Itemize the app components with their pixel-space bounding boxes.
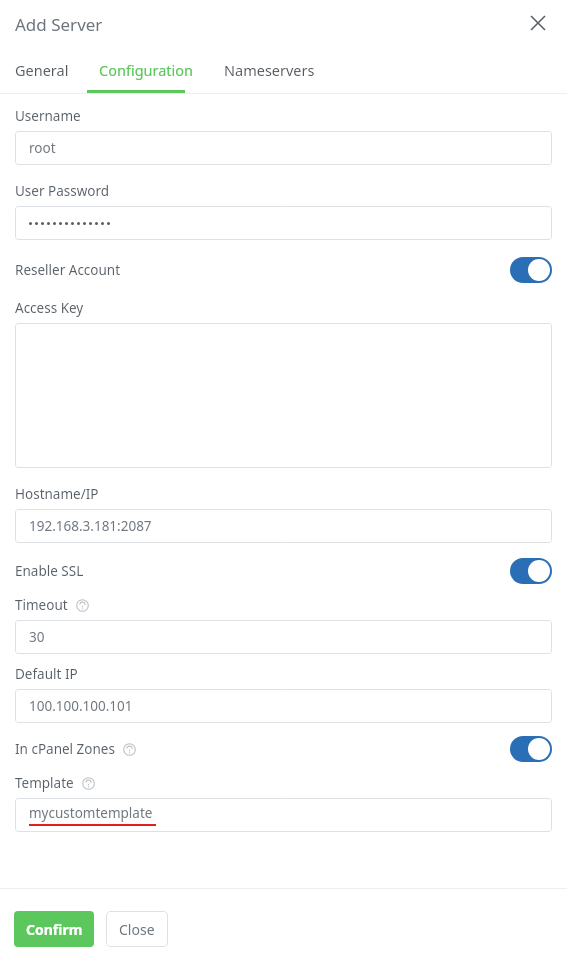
staticText: Template — [15, 774, 74, 792]
staticText: Configuration — [99, 60, 194, 80]
button[interactable]: Nameservers — [209, 47, 330, 93]
button[interactable]: Close — [106, 911, 168, 947]
button[interactable]: In cPanel Zones toggle, on — [510, 736, 552, 762]
button[interactable]: 192.168.3.181:2087 — [15, 509, 552, 543]
staticText: Timeout — [15, 596, 68, 614]
button[interactable]: 100.100.100.101 — [15, 689, 552, 723]
staticText: 100.100.100.101 — [29, 697, 133, 715]
button[interactable]: 30 — [15, 620, 552, 654]
staticText: 30 — [29, 628, 45, 646]
button[interactable] — [15, 206, 552, 240]
button[interactable]: Confirm — [14, 911, 94, 947]
staticText: Hostname/IP — [15, 485, 99, 503]
staticText: Default IP — [15, 665, 78, 683]
button[interactable]: Close dialog — [521, 6, 555, 40]
button[interactable]: root — [15, 131, 552, 165]
button[interactable]: General — [0, 47, 84, 93]
staticText: Enable SSL — [15, 562, 84, 580]
staticText: Access Key — [15, 299, 84, 317]
staticText: Reseller Account — [15, 261, 121, 279]
staticText: Confirm — [26, 920, 83, 939]
button[interactable]: mycustomtemplate — [15, 798, 552, 832]
staticText: Nameservers — [224, 60, 315, 80]
staticText: General — [15, 60, 69, 80]
staticText: mycustomtemplate — [29, 804, 153, 822]
staticText: root — [29, 139, 56, 157]
button[interactable]: Reseller Account toggle, on — [510, 257, 552, 283]
button[interactable]: Enable SSL toggle, on — [510, 558, 552, 584]
staticText: In cPanel Zones — [15, 740, 115, 758]
staticText: Username — [15, 107, 81, 125]
staticText: Add Server — [15, 13, 103, 36]
button[interactable] — [15, 323, 552, 468]
staticText: 192.168.3.181:2087 — [29, 517, 152, 535]
staticText: User Password — [15, 182, 110, 200]
staticText: Close — [119, 920, 155, 939]
button[interactable]: Configuration — [84, 47, 209, 93]
